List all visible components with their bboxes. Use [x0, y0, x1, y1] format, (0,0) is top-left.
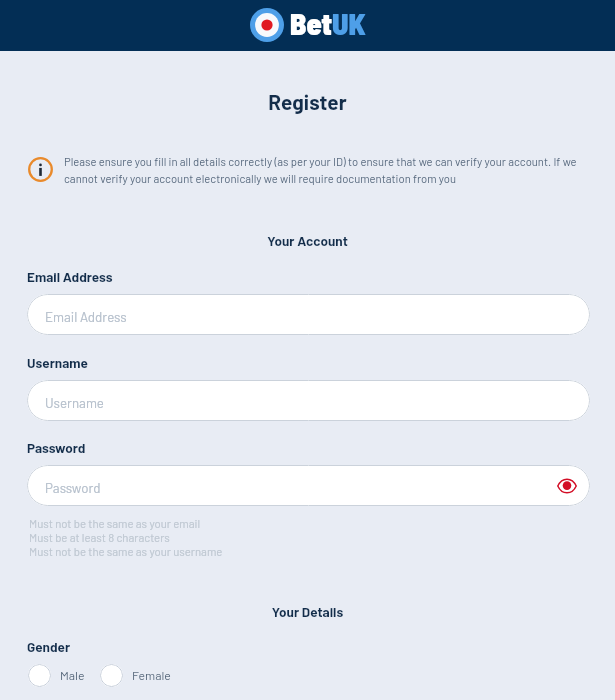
- staticText: Username: [27, 354, 88, 370]
- staticText: Email Address: [27, 268, 113, 284]
- staticText: Must not be the same as your email: [29, 517, 201, 531]
- staticText: Email Address: [45, 309, 127, 325]
- staticText: Username: [45, 395, 104, 411]
- button[interactable]: BetUK home: [250, 7, 366, 43]
- button[interactable]: Show password: [554, 473, 580, 499]
- staticText: Password: [45, 480, 101, 496]
- staticText: UK: [332, 5, 366, 41]
- button[interactable]: Female: [100, 664, 171, 687]
- staticText: Please ensure you fill in all details co…: [64, 155, 583, 186]
- staticText: Must not be the same as your username: [29, 545, 223, 559]
- staticText: Gender: [27, 638, 71, 654]
- staticText: Password: [27, 439, 86, 455]
- staticText: Female: [132, 668, 171, 683]
- staticText: Your Details: [0, 603, 615, 619]
- staticText: Male: [60, 668, 85, 683]
- button[interactable]: Email Address: [27, 294, 590, 335]
- button[interactable]: Password: [27, 465, 590, 506]
- staticText: Must be at least 8 characters: [29, 531, 170, 545]
- button[interactable]: Male: [28, 664, 85, 687]
- button[interactable]: Username: [27, 380, 590, 421]
- staticText: Your Account: [0, 232, 615, 248]
- staticText: Bet: [290, 5, 332, 41]
- staticText: Register: [0, 89, 615, 114]
